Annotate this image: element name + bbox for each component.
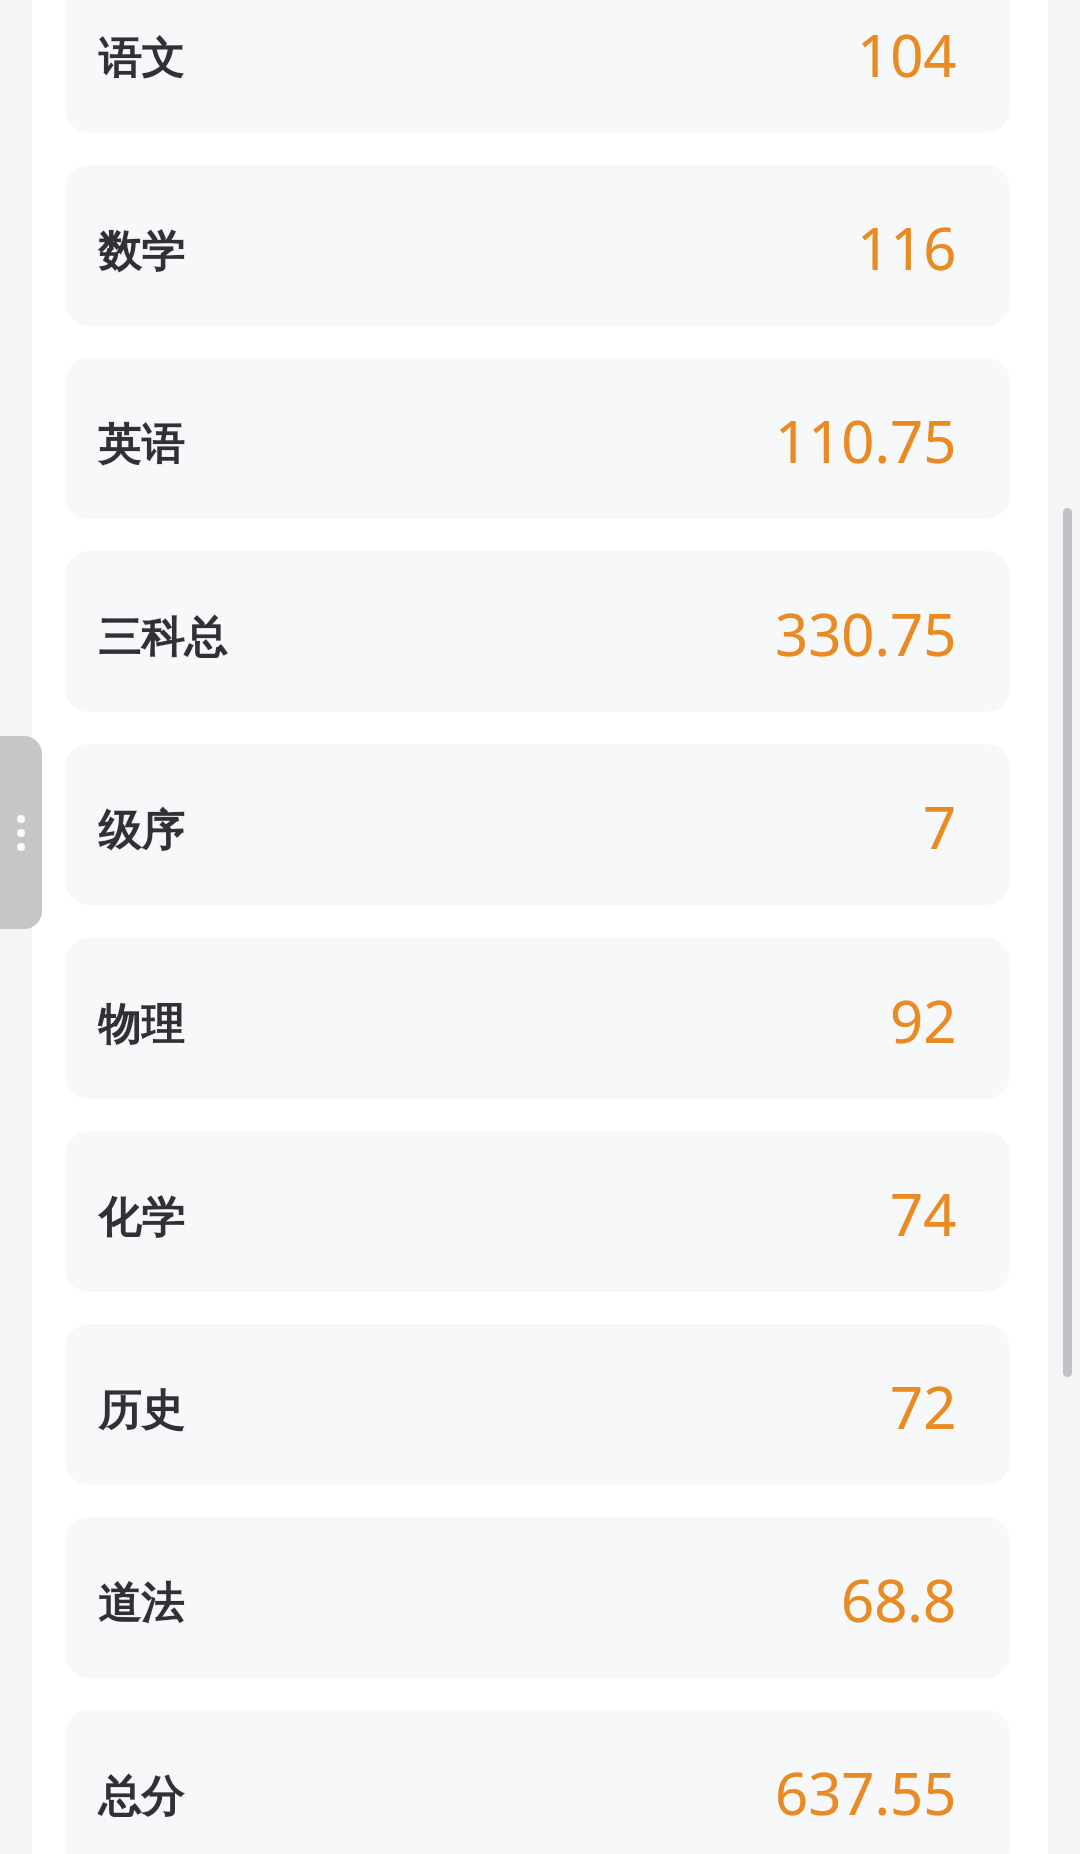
button[interactable]: 历史 — [65, 1324, 1010, 1485]
staticText: 总分 — [98, 1770, 184, 1824]
staticText: 英语 — [98, 418, 184, 472]
staticText: 化学 — [98, 1191, 184, 1245]
button[interactable]: 数学 — [65, 165, 1010, 326]
staticText: 104 — [857, 15, 957, 94]
staticText: 72 — [890, 1367, 957, 1446]
staticText: 68.8 — [841, 1560, 957, 1639]
staticText: 330.75 — [775, 594, 957, 673]
staticText: 三科总 — [98, 611, 227, 665]
button[interactable]: 道法 — [65, 1517, 1010, 1678]
staticText: 110.75 — [775, 401, 957, 480]
button[interactable]: 三科总 — [65, 551, 1010, 712]
staticText: 116 — [857, 208, 957, 287]
staticText: 数学 — [98, 225, 184, 279]
staticText: 物理 — [98, 998, 184, 1052]
staticText: 历史 — [98, 1384, 184, 1438]
staticText: 637.55 — [775, 1753, 957, 1832]
button[interactable]: Open side panel — [0, 736, 42, 929]
button[interactable]: 语文 — [65, 0, 1010, 133]
staticText: 74 — [890, 1174, 957, 1253]
button[interactable]: 化学 — [65, 1131, 1010, 1292]
button[interactable]: 物理 — [65, 938, 1010, 1099]
button[interactable]: 总分 — [65, 1710, 1010, 1854]
staticText: 级序 — [98, 804, 184, 858]
staticText: 道法 — [98, 1577, 184, 1631]
staticText: 7 — [923, 787, 957, 866]
button[interactable]: 级序 — [65, 744, 1010, 905]
staticText: 92 — [890, 981, 957, 1060]
button[interactable]: 英语 — [65, 358, 1010, 519]
staticText: 语文 — [98, 32, 184, 86]
